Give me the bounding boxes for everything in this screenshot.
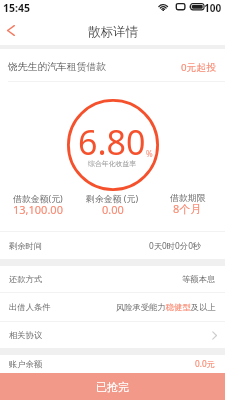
button[interactable]: 相关协议: [0, 322, 225, 348]
staticText: 剩余时间: [9, 241, 43, 251]
button[interactable]: 剩余时间: [0, 232, 225, 259]
staticText: 0.0元: [195, 358, 216, 369]
staticText: 还款方式: [9, 274, 43, 284]
staticText: 6.80: [78, 119, 146, 165]
staticText: 0.00: [102, 202, 124, 217]
button[interactable]: 还款方式: [0, 266, 225, 292]
button[interactable]: Back: [0, 16, 22, 45]
staticText: 出借人条件: [9, 302, 51, 312]
staticText: %: [146, 148, 153, 159]
staticText: 借款金额(元): [13, 192, 63, 204]
staticText: 15:45: [3, 1, 30, 15]
staticText: 0天0时0分0秒: [149, 240, 202, 251]
button[interactable]: 已抢完: [0, 373, 225, 400]
staticText: 8个月: [173, 201, 202, 216]
staticText: 0元起投: [181, 61, 216, 74]
staticText: 已抢完: [96, 380, 129, 394]
staticText: 13,100.00: [13, 202, 63, 217]
staticText: 等额本息: [182, 274, 216, 284]
staticText: 100: [204, 1, 222, 15]
button[interactable]: 出借人条件: [0, 293, 225, 321]
staticText: 账户余额: [9, 359, 43, 369]
staticText: 综合年化收益率: [88, 159, 137, 168]
button[interactable]: 账户余额: [0, 355, 225, 372]
staticText: 相关协议: [9, 330, 43, 340]
staticText: 借款期限: [170, 192, 206, 203]
staticText: 散标详情: [88, 24, 138, 40]
staticText: 风险承受能力稳健型及以上: [116, 302, 216, 312]
staticText: 剩余金额 (元): [86, 192, 139, 204]
staticText: 饶先生的汽车租赁借款: [8, 61, 106, 73]
